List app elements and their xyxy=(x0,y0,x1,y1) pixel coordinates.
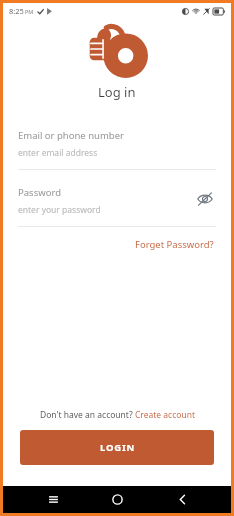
button[interactable]: Password xyxy=(18,186,216,227)
button[interactable]: Forget Password? xyxy=(133,236,216,253)
staticText: enter email address xyxy=(18,147,98,159)
staticText: Password xyxy=(18,186,61,199)
button[interactable]: Show password xyxy=(194,188,216,210)
staticText: 8:25 xyxy=(9,6,24,16)
staticText: PM xyxy=(25,8,34,15)
staticText: LOGIN xyxy=(100,441,135,454)
button[interactable]: Home xyxy=(102,486,132,513)
staticText: Log in xyxy=(98,83,136,101)
button[interactable]: Recent apps xyxy=(38,486,68,513)
button[interactable]: Email or phone number xyxy=(18,129,216,170)
button[interactable]: LOGIN xyxy=(20,430,214,465)
staticText: Don't have an account? xyxy=(40,409,135,421)
staticText: Create account xyxy=(135,409,195,421)
other: App logo xyxy=(86,21,148,77)
staticText: enter your password xyxy=(18,204,101,216)
button[interactable]: Back xyxy=(167,486,197,513)
staticText: Email or phone number xyxy=(18,129,124,142)
button[interactable]: Create account xyxy=(135,409,195,421)
staticText: Forget Password? xyxy=(135,238,214,251)
